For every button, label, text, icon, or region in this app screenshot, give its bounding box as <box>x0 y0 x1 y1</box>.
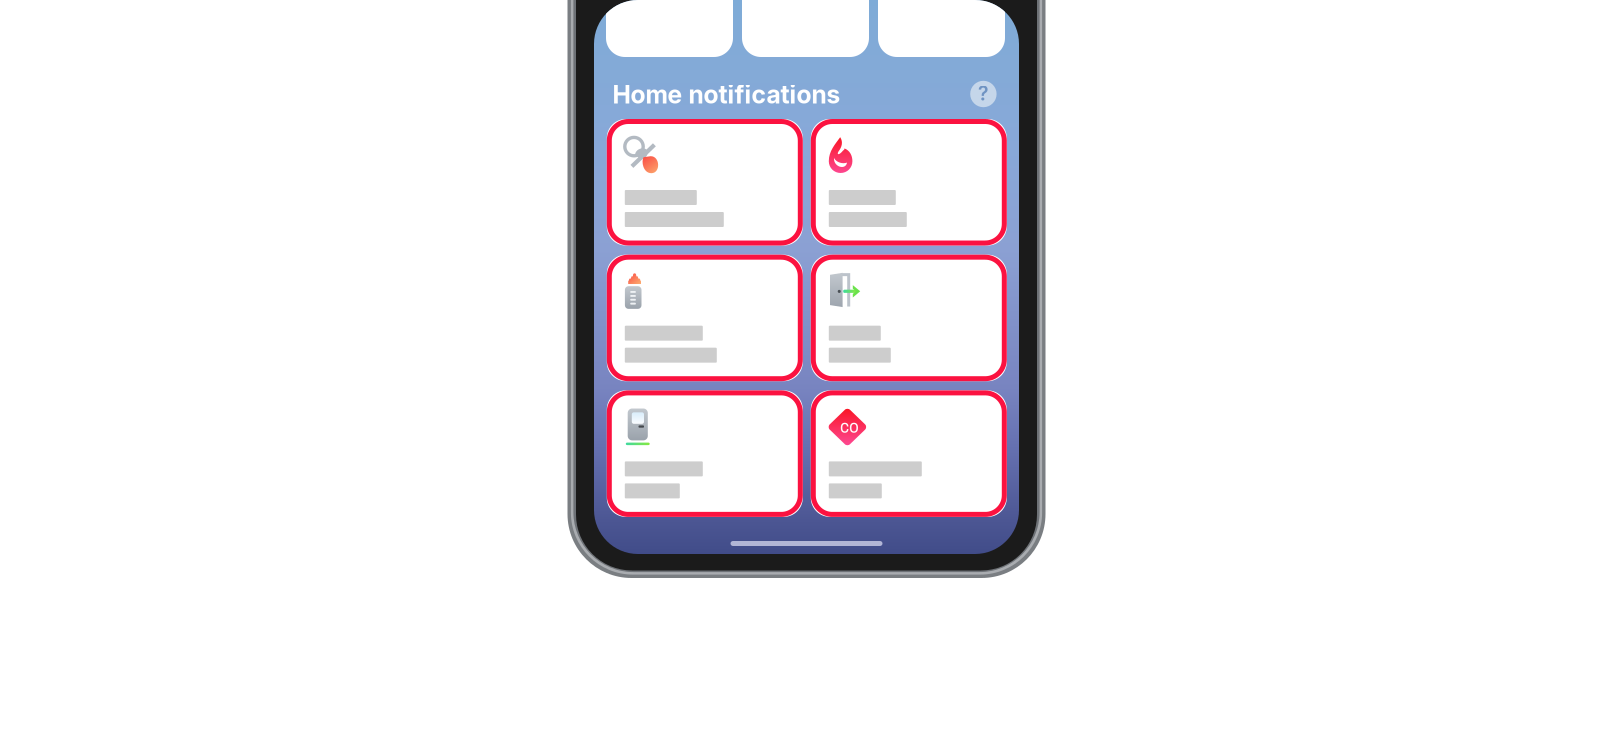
button[interactable]: Baby crying notification <box>607 119 803 245</box>
button[interactable]: Smoke alarm notification <box>811 119 1007 245</box>
staticText: ? <box>978 82 989 105</box>
staticText: CO <box>840 418 858 437</box>
button[interactable]: Feeding reminder <box>607 255 803 381</box>
button[interactable]: Help <box>970 81 997 107</box>
button[interactable]: Door opened notification <box>811 255 1007 381</box>
button[interactable]: Carbon monoxide alarm <box>811 390 1007 517</box>
staticText: Home notifications <box>612 79 840 109</box>
button[interactable]: Doorbell notification <box>607 390 803 517</box>
